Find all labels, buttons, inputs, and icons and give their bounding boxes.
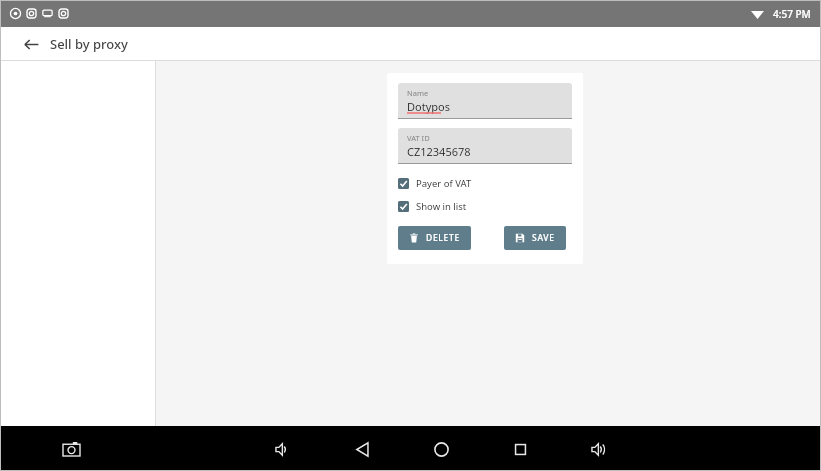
staticText: DELETE bbox=[426, 232, 460, 244]
button[interactable]: Payer of VAT bbox=[398, 177, 476, 190]
staticText: Name bbox=[407, 88, 429, 98]
button[interactable]: Name bbox=[398, 83, 572, 118]
button[interactable]: SAVE bbox=[504, 226, 566, 250]
button[interactable]: Show in list bbox=[398, 200, 471, 213]
staticText: Sell by proxy bbox=[50, 35, 128, 53]
button[interactable]: Home bbox=[424, 432, 458, 466]
staticText: Payer of VAT bbox=[416, 177, 472, 190]
button[interactable]: Volume down bbox=[266, 432, 300, 466]
button[interactable]: Back bbox=[20, 33, 42, 55]
staticText: VAT ID bbox=[407, 133, 430, 143]
button[interactable]: Back bbox=[345, 432, 379, 466]
button[interactable]: Volume up bbox=[582, 432, 616, 466]
button[interactable]: Recent apps bbox=[503, 432, 537, 466]
staticText: SAVE bbox=[532, 232, 555, 244]
button[interactable]: Screenshot bbox=[56, 434, 86, 464]
staticText: Show in list bbox=[416, 200, 467, 213]
staticText: 4:57 PM bbox=[773, 7, 811, 21]
button[interactable]: DELETE bbox=[398, 226, 471, 250]
button[interactable]: VAT ID bbox=[398, 128, 572, 163]
staticText: CZ12345678 bbox=[407, 144, 471, 159]
staticText: Dotypos bbox=[407, 99, 450, 114]
